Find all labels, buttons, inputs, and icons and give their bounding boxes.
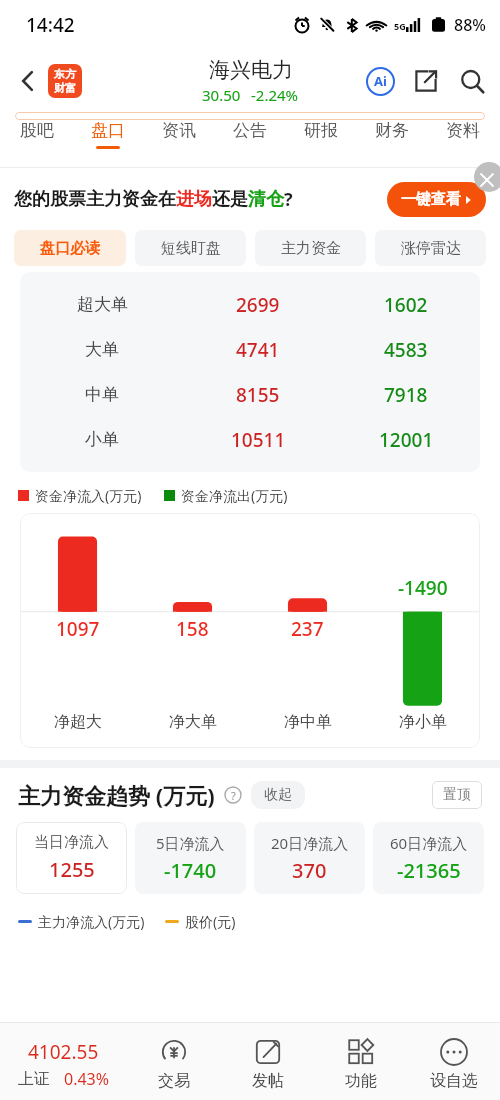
staticText: 资讯 — [162, 120, 196, 141]
staticText: 1255 — [49, 856, 95, 883]
staticText: 资金净流入(万元) — [35, 486, 142, 505]
staticText: 主力净流入(万元) — [38, 912, 145, 931]
staticText: 东方 — [54, 67, 76, 81]
staticText: 237 — [291, 616, 324, 642]
staticText: 盘口必读 — [40, 239, 100, 258]
button[interactable]: 收起 — [251, 781, 305, 809]
staticText: 资金净流出(万元) — [181, 486, 288, 505]
staticText: -21365 — [397, 857, 461, 884]
staticText: 股价(元) — [185, 912, 236, 931]
button[interactable]: Back — [8, 61, 48, 101]
staticText: 发帖 — [252, 1071, 284, 1091]
staticText: 净超大 — [54, 712, 102, 732]
staticText: 30.50 — [202, 85, 241, 105]
button[interactable]: 功能 — [314, 1038, 407, 1091]
staticText: 当日净流入 — [34, 833, 109, 852]
staticText: 交易 — [158, 1071, 190, 1091]
button[interactable]: 研报 — [298, 120, 344, 149]
staticText: 主力资金 — [281, 239, 341, 258]
staticText: 小单 — [85, 429, 119, 450]
button[interactable]: 公告 — [227, 120, 273, 149]
staticText: 14:42 — [26, 12, 75, 38]
staticText: 大单 — [85, 339, 119, 360]
button[interactable]: 60日净流入 — [373, 822, 484, 894]
staticText: 8155 — [236, 382, 280, 408]
button[interactable]: 财务 — [369, 120, 415, 149]
staticText: 158 — [176, 616, 209, 642]
button[interactable]: 发帖 — [221, 1038, 314, 1091]
staticText: Ai — [374, 72, 387, 90]
staticText: 1602 — [384, 292, 428, 318]
button[interactable]: 一键查看 — [387, 182, 486, 217]
staticText: 12001 — [379, 427, 434, 453]
staticText: -1490 — [398, 575, 448, 601]
button[interactable]: Search — [456, 65, 488, 97]
button[interactable]: AI assistant — [364, 65, 396, 97]
button[interactable]: Help — [223, 785, 243, 805]
staticText: 4583 — [384, 337, 428, 363]
staticText: 2699 — [236, 292, 280, 318]
staticText: 收起 — [264, 786, 292, 804]
button[interactable]: 涨停雷达 — [375, 230, 486, 266]
staticText: 主力资金趋势 (万元) — [18, 780, 215, 810]
staticText: 净中单 — [284, 712, 332, 732]
button[interactable]: 交易 — [127, 1038, 221, 1091]
staticText: ? — [284, 187, 293, 212]
staticText: 进场 — [176, 188, 212, 211]
button[interactable]: 置顶 — [432, 781, 482, 809]
button[interactable]: 当日净流入 — [16, 822, 127, 894]
button[interactable]: 主力资金 — [255, 230, 366, 266]
staticText: 7918 — [384, 382, 428, 408]
staticText: 您的股票主力资金在 — [14, 188, 176, 211]
button[interactable]: 盘口必读 — [14, 230, 126, 266]
staticText: 净小单 — [399, 712, 447, 732]
staticText: 20日净流入 — [271, 833, 349, 853]
staticText: 88% — [454, 14, 486, 36]
button[interactable]: 盘口 — [85, 120, 131, 149]
staticText: 股吧 — [20, 120, 54, 141]
staticText: -2.24% — [251, 85, 299, 105]
staticText: 盘口 — [91, 120, 125, 141]
staticText: 4741 — [236, 337, 280, 363]
staticText: 财富 — [54, 81, 76, 95]
staticText: 上证 — [18, 1069, 50, 1089]
staticText: 60日净流入 — [390, 833, 468, 853]
button[interactable]: Close ad — [474, 162, 500, 192]
staticText: 资料 — [446, 120, 480, 141]
button[interactable]: Share — [410, 65, 442, 97]
staticText: 涨停雷达 — [401, 239, 461, 258]
staticText: 海兴电力 — [209, 57, 293, 83]
staticText: 中单 — [85, 384, 119, 405]
staticText: 10511 — [231, 427, 286, 453]
staticText: 1097 — [56, 616, 100, 642]
button[interactable]: 20日净流入 — [254, 822, 365, 894]
button[interactable]: 资讯 — [156, 120, 202, 149]
staticText: 一键查看 — [401, 190, 461, 209]
staticText: 公告 — [233, 120, 267, 141]
button[interactable]: East Money — [48, 64, 82, 98]
staticText: 清仓 — [248, 188, 284, 211]
button[interactable]: 5日净流入 — [135, 822, 246, 894]
staticText: ? — [231, 788, 236, 803]
button[interactable]: 4102.55 — [0, 1039, 127, 1090]
staticText: 0.43% — [64, 1068, 110, 1090]
staticText: 5G — [394, 20, 406, 32]
button[interactable]: 短线盯盘 — [135, 230, 246, 266]
staticText: 净大单 — [169, 712, 217, 732]
staticText: 设自选 — [430, 1071, 478, 1091]
button[interactable]: 设自选 — [407, 1038, 500, 1091]
button[interactable]: 股吧 — [14, 120, 60, 149]
staticText: 还是 — [212, 188, 248, 211]
staticText: 置顶 — [443, 786, 471, 804]
button[interactable]: 资料 — [440, 120, 486, 149]
staticText: -1740 — [164, 857, 217, 884]
staticText: 功能 — [345, 1071, 377, 1091]
staticText: 短线盯盘 — [161, 239, 221, 258]
staticText: 财务 — [375, 120, 409, 141]
staticText: 370 — [292, 857, 327, 884]
staticText: 4102.55 — [28, 1039, 99, 1065]
staticText: 超大单 — [77, 294, 128, 315]
staticText: 研报 — [304, 120, 338, 141]
staticText: 5日净流入 — [156, 833, 225, 853]
